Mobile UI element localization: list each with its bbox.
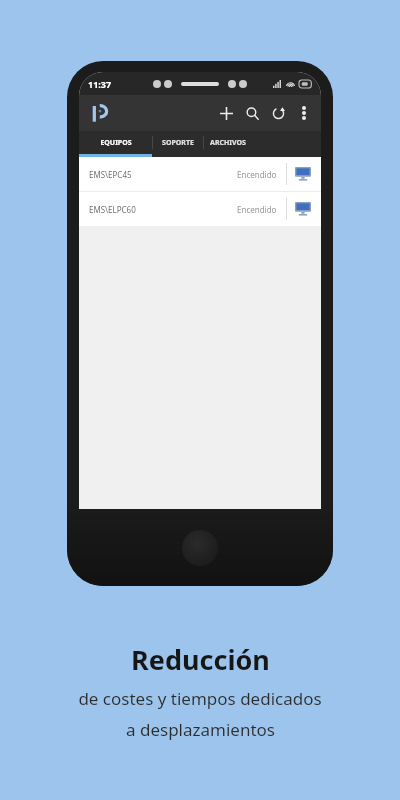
staticText: Encendido bbox=[237, 204, 277, 215]
staticText: de costes y tiempos dedicados bbox=[78, 687, 322, 710]
staticText: Encendido bbox=[237, 169, 277, 180]
button[interactable]: EMS\EPC45 bbox=[79, 157, 321, 191]
button[interactable]: EMS\ELPC60 bbox=[79, 192, 321, 226]
staticText: EQUIPOS bbox=[100, 138, 132, 148]
staticText: ARCHIVOS bbox=[210, 138, 246, 148]
staticText: a desplazamientos bbox=[126, 718, 275, 741]
staticText: EMS\EPC45 bbox=[89, 169, 132, 180]
button[interactable]: Add bbox=[213, 95, 239, 131]
button[interactable]: EQUIPOS bbox=[79, 131, 152, 154]
button[interactable]: More options bbox=[291, 95, 317, 131]
staticText: 11:37 bbox=[88, 78, 112, 90]
button[interactable]: Pandora logo bbox=[87, 101, 111, 125]
button[interactable]: Search bbox=[239, 95, 265, 131]
button[interactable]: Refresh bbox=[265, 95, 291, 131]
button[interactable]: SOPORTE bbox=[153, 131, 203, 154]
staticText: Reducción bbox=[131, 641, 270, 678]
staticText: SOPORTE bbox=[162, 138, 194, 148]
staticText: EMS\ELPC60 bbox=[89, 204, 136, 215]
button[interactable]: ARCHIVOS bbox=[204, 131, 251, 154]
